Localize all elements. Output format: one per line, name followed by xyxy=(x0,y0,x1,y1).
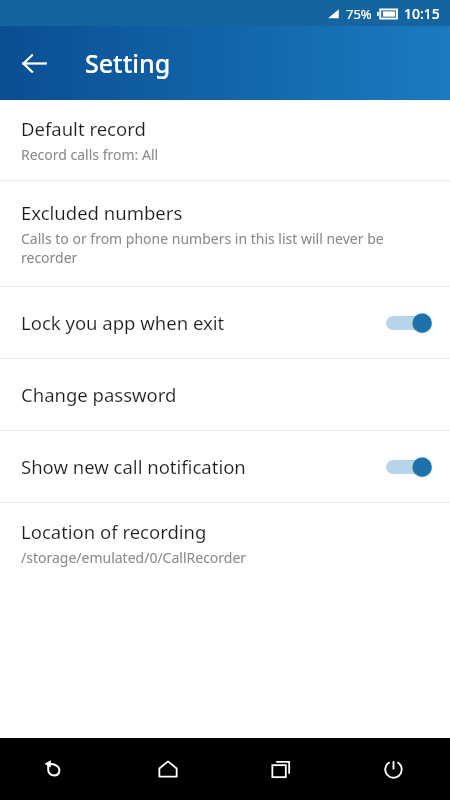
staticText: Record calls from: All xyxy=(21,145,159,164)
staticText: Default record xyxy=(21,116,146,141)
button[interactable]: Power xyxy=(337,738,450,800)
staticText: 10:15 xyxy=(404,4,440,23)
staticText: Calls to or from phone numbers in this l… xyxy=(21,229,384,267)
button[interactable]: Back xyxy=(10,39,58,87)
staticText: Show new call notification xyxy=(21,454,246,479)
staticText: Change password xyxy=(21,382,177,407)
button[interactable]: Recent apps xyxy=(224,738,337,800)
button[interactable]: Home xyxy=(112,738,224,800)
button[interactable]: Toggle Lock you app when exit xyxy=(386,306,432,340)
staticText: Excluded numbers xyxy=(21,200,183,225)
button[interactable]: Change password xyxy=(0,359,450,430)
staticText: Setting xyxy=(85,46,171,80)
staticText: /storage/emulated/0/CallRecorder xyxy=(21,548,247,567)
button[interactable]: Lock you app when exit xyxy=(0,287,450,358)
button[interactable]: Location of recording xyxy=(0,503,450,583)
staticText: 75% xyxy=(346,5,372,23)
button[interactable]: Back xyxy=(0,738,112,800)
button[interactable]: Show new call notification xyxy=(0,431,450,502)
staticText: Location of recording xyxy=(21,519,207,544)
button[interactable]: Toggle Show new call notification xyxy=(386,450,432,484)
button[interactable]: Default record xyxy=(0,100,450,180)
staticText: Lock you app when exit xyxy=(21,310,225,335)
button[interactable]: Excluded numbers xyxy=(0,181,450,286)
